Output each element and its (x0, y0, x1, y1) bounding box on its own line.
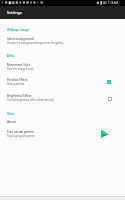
button[interactable]: Parallax Effect (0, 75, 125, 88)
staticText: Parallax Effect (7, 78, 28, 82)
button[interactable]: Select background (0, 34, 125, 47)
button[interactable]: Free casual games (0, 127, 125, 140)
staticText: 4G (103, 1, 107, 5)
staticText: Free casual games (7, 130, 34, 134)
other: Google Play Store (99, 129, 111, 141)
button[interactable]: About (0, 117, 125, 126)
staticText: About (7, 120, 16, 124)
button[interactable]: Movement Style (0, 60, 125, 73)
staticText: Effect (7, 54, 15, 58)
staticText: How the image moves (7, 67, 34, 70)
staticText: Control brightness effect when moving (7, 98, 54, 101)
staticText: Other (7, 112, 15, 116)
staticText: Select background (7, 37, 34, 41)
staticText: Brightness Effect (7, 94, 32, 98)
staticText: Settings (7, 10, 22, 15)
staticText: 1:18 AM (108, 1, 118, 5)
other: Brightness Effect, off (108, 97, 112, 101)
button[interactable]: Brightness Effect (0, 91, 125, 104)
staticText: Show particles (7, 82, 25, 85)
other: Parallax Effect, on (107, 80, 111, 84)
staticText: Movement Style (7, 63, 31, 67)
staticText: Wallpaper Image (7, 28, 29, 32)
staticText: Choose the background image from the gal… (7, 41, 64, 44)
staticText: Tap to get great games (7, 134, 35, 137)
